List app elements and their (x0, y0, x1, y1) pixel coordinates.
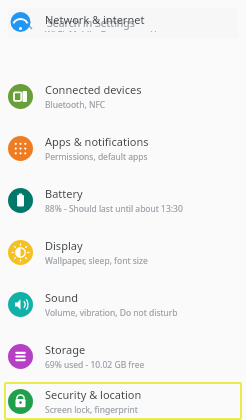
staticText: Wi-Fi, Mobile, Data usage, Hotspot (45, 29, 183, 32)
staticText: Storage (45, 342, 86, 357)
staticText: 69% used - 10.02 GB free (45, 359, 145, 371)
staticText: Screen lock, fingerprint (45, 404, 138, 416)
staticText: Apps & notifications (45, 134, 149, 149)
button[interactable]: Connected devices (0, 70, 246, 122)
staticText: 88% - Should last until about 13:30 (45, 203, 183, 215)
button[interactable]: Apps & notifications (0, 122, 246, 174)
button[interactable]: Storage (0, 330, 246, 382)
staticText: Battery (45, 186, 83, 201)
staticText: Connected devices (45, 82, 142, 97)
other: Search (20, 17, 33, 30)
button[interactable]: Sound (0, 278, 246, 330)
button[interactable]: Battery (0, 174, 246, 226)
button[interactable]: Security & location (4, 382, 242, 420)
button[interactable]: Search (8, 8, 238, 38)
button[interactable]: Display (0, 226, 246, 278)
staticText: Display (45, 238, 83, 253)
staticText: Permissions, default apps (45, 151, 148, 163)
staticText: Network & internet (45, 12, 145, 27)
staticText: Security & location (45, 387, 142, 402)
staticText: Volume, vibration, Do not disturb (45, 307, 178, 319)
staticText: Sound (45, 290, 79, 305)
staticText: Search in Settings (47, 16, 135, 30)
staticText: Bluetooth, NFC (45, 99, 106, 111)
staticText: Wallpaper, sleep, font size (45, 255, 148, 267)
